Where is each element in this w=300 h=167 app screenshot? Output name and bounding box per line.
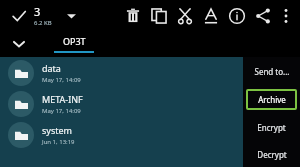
button[interactable]: Cut — [172, 1, 198, 31]
staticText: 3 — [34, 4, 41, 19]
staticText: Send to... — [254, 66, 290, 77]
button[interactable]: Info — [224, 1, 250, 31]
button[interactable]: Expand selection — [60, 1, 82, 31]
button[interactable]: Share — [250, 1, 276, 31]
button[interactable]: data — [0, 57, 243, 88]
button[interactable]: Copy — [146, 1, 172, 31]
button[interactable]: Send to... — [243, 57, 300, 85]
staticText: OP3T — [63, 35, 86, 47]
button[interactable]: Archive — [243, 85, 300, 113]
staticText: data — [42, 62, 61, 74]
button[interactable]: Collapse — [0, 31, 38, 57]
staticText: Jun 1, 13:19 — [42, 138, 75, 146]
button[interactable]: Decrypt — [243, 141, 300, 167]
button[interactable]: Rename — [198, 1, 224, 31]
staticText: May 17, 14:09 — [42, 76, 81, 84]
staticText: Archive — [258, 94, 286, 105]
button[interactable]: Delete — [120, 1, 146, 31]
button[interactable]: META-INF — [0, 88, 243, 119]
button[interactable]: system — [0, 119, 243, 150]
button[interactable]: Encrypt — [243, 113, 300, 141]
staticText: Encrypt — [257, 122, 286, 133]
button[interactable]: Selection — [6, 1, 32, 31]
button[interactable]: More options — [276, 1, 296, 31]
staticText: 6.2 KB — [34, 19, 52, 27]
button[interactable]: OP3T — [38, 31, 110, 57]
staticText: Decrypt — [257, 149, 287, 160]
staticText: META-INF — [42, 93, 83, 105]
staticText: May 17, 14:09 — [42, 107, 81, 115]
staticText: system — [42, 124, 72, 136]
